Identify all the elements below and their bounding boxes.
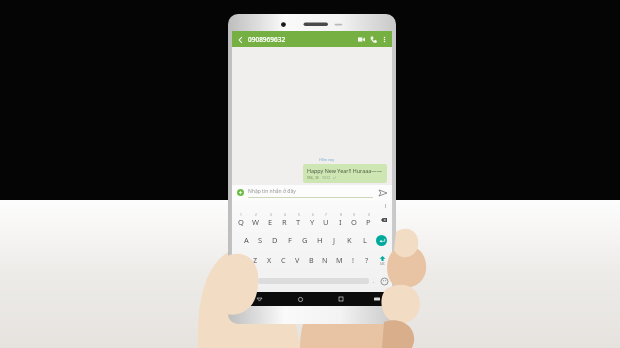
button[interactable]: Switch keyboard	[370, 292, 384, 306]
button[interactable]: More options	[379, 34, 389, 44]
button[interactable]: 1	[233, 210, 248, 230]
staticText: 8	[340, 213, 342, 217]
button[interactable]: N	[318, 250, 332, 270]
button[interactable]: Add attachment	[235, 187, 246, 198]
button[interactable]: Video call	[355, 33, 367, 45]
button[interactable]: Call	[367, 33, 379, 45]
button[interactable]: !	[346, 250, 360, 270]
button[interactable]: G	[297, 230, 312, 250]
button[interactable]: C	[276, 250, 290, 270]
button[interactable]: Emoji	[378, 271, 390, 291]
staticText: X	[267, 255, 272, 265]
staticText: P	[366, 217, 371, 227]
staticText: M	[336, 255, 343, 265]
staticText: 2	[255, 213, 257, 217]
button[interactable]: K	[342, 230, 357, 250]
staticText: 0	[368, 213, 370, 217]
button[interactable]: H	[312, 230, 327, 250]
staticText: VNL, SE	[307, 175, 319, 180]
button[interactable]: 0	[361, 210, 375, 230]
staticText: R	[282, 217, 287, 227]
staticText: J	[333, 235, 336, 245]
staticText: F	[288, 235, 292, 245]
staticText: V	[295, 255, 300, 265]
button[interactable]: ?	[360, 250, 374, 270]
button[interactable]: 4	[277, 210, 291, 230]
staticText: Z	[253, 255, 258, 265]
staticText: C	[281, 255, 286, 265]
button[interactable]: Shift	[233, 250, 249, 270]
staticText: G	[302, 235, 308, 245]
staticText: Hôm nay	[319, 157, 335, 162]
button[interactable]: A	[239, 230, 253, 250]
staticText: Happy New Year!! Huraaa——	[307, 167, 383, 174]
button[interactable]: D	[267, 230, 282, 250]
button[interactable]: Back	[235, 34, 246, 45]
staticText: 3	[270, 213, 272, 217]
staticText: 7	[325, 213, 327, 217]
button[interactable]: Home	[293, 292, 307, 306]
button[interactable]: 5	[291, 210, 305, 230]
button[interactable]: V	[290, 250, 304, 270]
staticText: 0908969632	[248, 35, 286, 44]
button[interactable]: Z	[249, 250, 262, 270]
button[interactable]: 7	[319, 210, 333, 230]
button[interactable]: Backspace	[375, 210, 391, 230]
button[interactable]: Send	[377, 187, 389, 199]
staticText: B	[309, 255, 314, 265]
button[interactable]: L	[357, 230, 372, 250]
button[interactable]: 3	[263, 210, 277, 230]
staticText: 5	[298, 213, 300, 217]
staticText: Q	[238, 217, 244, 227]
button[interactable]: X	[262, 250, 276, 270]
staticText: .	[373, 278, 375, 285]
button[interactable]: Shift	[374, 250, 391, 270]
button[interactable]: Back	[252, 292, 266, 306]
button[interactable]: S	[253, 230, 267, 250]
staticText: Nhập tin nhắn ở đây	[248, 188, 296, 195]
button[interactable]: Recents	[334, 292, 348, 306]
button[interactable]: 9	[347, 210, 361, 230]
button[interactable]: F	[282, 230, 297, 250]
staticText: U	[323, 217, 329, 227]
staticText: T	[296, 217, 301, 227]
staticText: K	[347, 235, 352, 245]
staticText: ABC	[380, 262, 385, 266]
button[interactable]: 6	[305, 210, 319, 230]
button[interactable]: Enter	[372, 230, 391, 250]
button[interactable]: M	[332, 250, 346, 270]
staticText: A	[244, 235, 249, 245]
button[interactable]: J	[327, 230, 342, 250]
staticText: S	[258, 235, 263, 245]
button[interactable]: Happy New Year!! Huraaa——	[303, 164, 387, 183]
staticText: 6	[312, 213, 314, 217]
staticText: 4	[284, 213, 286, 217]
staticText: 10:12	[322, 176, 331, 180]
staticText: N	[322, 255, 328, 265]
staticText: O	[351, 217, 357, 227]
staticText: 9	[353, 213, 355, 217]
staticText: Y	[310, 217, 315, 227]
staticText: ?	[365, 255, 369, 265]
staticText: H	[317, 235, 323, 245]
staticText: E	[268, 217, 273, 227]
button[interactable]: 8	[333, 210, 347, 230]
button[interactable]: B	[304, 250, 318, 270]
staticText: 1	[240, 213, 242, 217]
staticText: W	[252, 217, 259, 227]
button[interactable]: 2	[248, 210, 263, 230]
staticText: I	[339, 217, 342, 227]
button[interactable]: ,	[250, 271, 258, 291]
staticText: !	[352, 255, 354, 265]
staticText: L	[363, 235, 367, 245]
staticText: D	[272, 235, 278, 245]
button[interactable]: .	[369, 271, 378, 291]
